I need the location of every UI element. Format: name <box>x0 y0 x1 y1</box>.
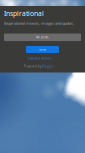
button[interactable]: Blogger <box>42 65 54 68</box>
staticText: View web version <box>27 57 51 60</box>
staticText: Inspirational movies, images and quotes. <box>4 20 74 26</box>
staticText: Powered by <box>24 65 41 68</box>
staticText: . <box>55 65 56 68</box>
staticText: No posts. <box>36 35 49 39</box>
button[interactable]: View web version <box>26 56 52 61</box>
staticText: Home <box>38 48 46 51</box>
button[interactable]: Home <box>26 46 59 53</box>
staticText: Inspirational <box>4 9 44 18</box>
staticText: Blogger <box>42 65 54 68</box>
